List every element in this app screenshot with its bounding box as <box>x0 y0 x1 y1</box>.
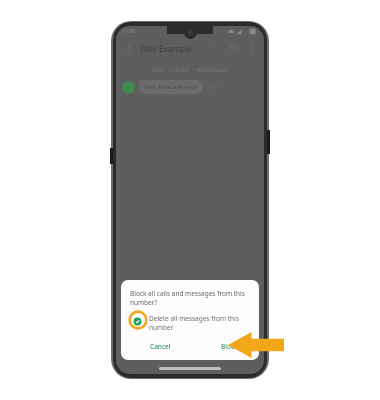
staticText: Jake Example <box>141 43 192 54</box>
staticText: Delete all messages from this number <box>149 314 250 332</box>
staticText: 11:00 <box>206 84 218 90</box>
button[interactable]: Cancel <box>142 338 179 355</box>
staticText: Block <box>221 342 238 351</box>
button[interactable]: Call <box>207 40 223 56</box>
staticText: Cancel <box>150 342 171 351</box>
button[interactable]: Block <box>213 338 246 355</box>
staticText: 11:00 <box>122 28 135 35</box>
button[interactable]: Delete all messages from this number <box>130 314 250 332</box>
staticText: Hey, How are you? <box>145 83 197 91</box>
staticText: Today 11:00 AM • Text message <box>152 67 228 74</box>
staticText: Block all calls and messages from this n… <box>130 289 250 307</box>
